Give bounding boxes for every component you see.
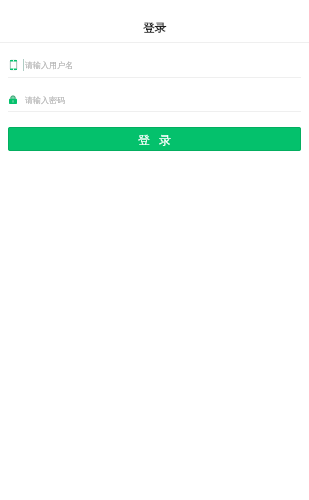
- staticText: 请输入用户名: [25, 60, 73, 70]
- staticText: 登录: [143, 21, 166, 35]
- staticText: 请输入密码: [25, 95, 65, 105]
- button[interactable]: Password: [0, 78, 309, 111]
- other: Password: [9, 95, 17, 104]
- staticText: 登 录: [138, 131, 172, 147]
- button[interactable]: 登 录: [8, 127, 301, 151]
- other: Username: [10, 60, 17, 70]
- button[interactable]: Username: [0, 43, 309, 77]
